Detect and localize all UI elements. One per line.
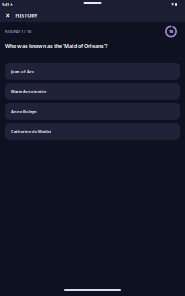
button[interactable]: Anne Boleyn bbox=[5, 103, 180, 120]
button[interactable]: Catherine de Medici bbox=[5, 123, 180, 140]
button[interactable]: Marie Antoinette bbox=[5, 83, 180, 100]
staticText: Who was known as the ‘Maid of Orleans’? bbox=[5, 42, 108, 50]
button[interactable]: Joan of Arc bbox=[5, 63, 180, 80]
staticText: 15 bbox=[169, 29, 173, 34]
staticText: Marie Antoinette bbox=[11, 89, 46, 94]
button[interactable]: Time remaining: 15 seconds bbox=[164, 24, 178, 38]
staticText: 9:41 bbox=[2, 2, 9, 7]
button[interactable]: HISTORY bbox=[12, 10, 37, 21]
staticText: ROUND 1 / 10 bbox=[5, 29, 31, 34]
button[interactable]: Close bbox=[3, 10, 12, 21]
staticText: Joan of Arc bbox=[11, 69, 34, 74]
staticText: Anne Boleyn bbox=[11, 109, 37, 114]
staticText: Catherine de Medici bbox=[11, 129, 51, 134]
staticText: HISTORY bbox=[15, 12, 37, 19]
